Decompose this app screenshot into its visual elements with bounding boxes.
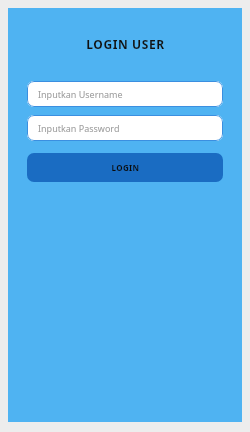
button[interactable]: Inputkan Username [27, 81, 223, 107]
staticText: LOGIN [111, 162, 140, 173]
button[interactable]: Inputkan Password [27, 115, 223, 141]
staticText: Inputkan Password [38, 122, 120, 134]
button[interactable]: LOGIN [27, 153, 223, 182]
staticText: Inputkan Username [38, 88, 123, 100]
staticText: LOGIN USER [86, 36, 165, 52]
